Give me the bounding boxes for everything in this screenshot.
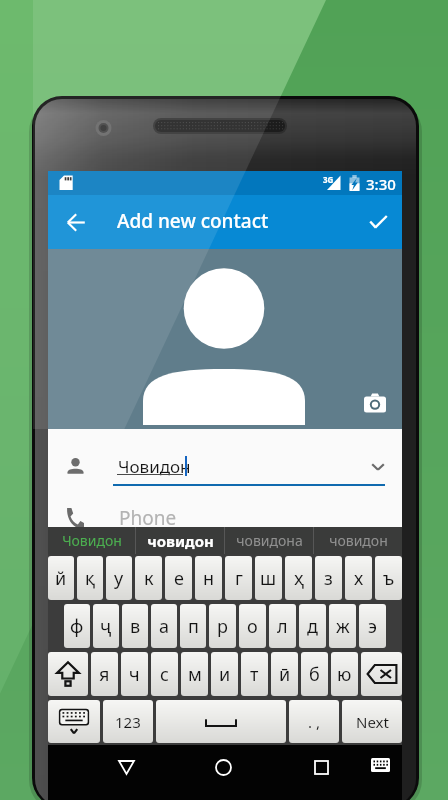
button[interactable]: б [301, 652, 328, 696]
staticText: з [324, 566, 333, 591]
button[interactable]: г [225, 556, 252, 600]
button[interactable]: т [241, 652, 268, 696]
button[interactable] [48, 700, 100, 743]
button[interactable]: Switch keyboard [360, 745, 400, 785]
button[interactable]: д [299, 604, 326, 648]
staticText: к [144, 566, 154, 591]
staticText: м [188, 662, 202, 687]
button[interactable]: ж [329, 604, 356, 648]
button[interactable]: қ [77, 556, 103, 600]
button[interactable]: Back [104, 745, 148, 789]
staticText: ӣ [279, 662, 291, 687]
button[interactable]: Човидон [48, 527, 135, 554]
staticText: х [354, 566, 364, 591]
button[interactable]: ю [331, 652, 358, 696]
button[interactable]: с [151, 652, 178, 696]
staticText: ш [260, 566, 277, 591]
staticText: Човидон [62, 531, 122, 550]
staticText: човидон [329, 531, 388, 550]
button[interactable]: човидон [136, 527, 224, 554]
staticText: Phone [119, 505, 177, 531]
button[interactable]: я [91, 652, 118, 696]
button[interactable]: ӣ [271, 652, 298, 696]
staticText: . , [308, 712, 320, 732]
staticText: ф [70, 614, 84, 639]
staticText: човидон [147, 531, 214, 551]
button[interactable]: н [195, 556, 222, 600]
staticText: е [174, 566, 184, 591]
staticText: а [159, 614, 170, 639]
button[interactable]: Expand name fields [358, 447, 398, 487]
staticText: у [114, 566, 124, 591]
staticText: Човидон [118, 455, 191, 478]
staticText: Next [356, 712, 389, 732]
button[interactable]: у [106, 556, 132, 600]
staticText: т [250, 662, 259, 687]
button[interactable]: . , [289, 700, 339, 743]
button[interactable]: ф [64, 604, 90, 648]
button[interactable] [48, 652, 88, 696]
staticText: и [219, 662, 231, 687]
button[interactable]: е [165, 556, 192, 600]
button[interactable]: Phone [48, 491, 402, 527]
button[interactable]: х [345, 556, 372, 600]
button[interactable]: м [181, 652, 208, 696]
staticText: 123 [115, 712, 141, 732]
staticText: Add new contact [117, 208, 269, 234]
staticText: д [307, 614, 318, 639]
button[interactable]: Recents [299, 745, 343, 789]
button[interactable]: а [151, 604, 177, 648]
button[interactable]: Next [342, 700, 402, 743]
button[interactable]: ҳ [285, 556, 312, 600]
button[interactable]: к [135, 556, 162, 600]
staticText: о [247, 614, 258, 639]
button[interactable]: ш [255, 556, 282, 600]
button[interactable]: ъ [375, 556, 402, 600]
staticText: ч [129, 662, 140, 687]
button[interactable]: Home [201, 745, 245, 789]
staticText: п [188, 614, 199, 639]
staticText: н [203, 566, 215, 591]
button[interactable]: Take photo [364, 393, 386, 413]
staticText: ъ [383, 566, 395, 591]
staticText: л [277, 614, 288, 639]
button[interactable]: Save [356, 200, 400, 244]
staticText: 3G [323, 174, 334, 185]
button[interactable]: р [209, 604, 236, 648]
staticText: р [217, 614, 228, 639]
button[interactable]: човидон [314, 527, 402, 554]
staticText: г [235, 566, 243, 591]
button[interactable]: 123 [103, 700, 153, 743]
staticText: в [130, 614, 141, 639]
staticText: б [309, 662, 320, 687]
button[interactable]: з [315, 556, 342, 600]
button[interactable] [361, 652, 402, 696]
button[interactable]: л [269, 604, 296, 648]
staticText: ж [336, 614, 350, 639]
staticText: й [55, 566, 67, 591]
staticText: човидона [236, 531, 303, 550]
staticText: ҷ [100, 614, 112, 639]
staticText: с [160, 662, 169, 687]
staticText: ю [337, 662, 352, 687]
button[interactable]: човидона [225, 527, 313, 554]
staticText: қ [85, 566, 96, 591]
button[interactable]: э [359, 604, 386, 648]
staticText: 3:30 [366, 174, 396, 194]
button[interactable]: в [122, 604, 148, 648]
button[interactable]: ҷ [93, 604, 119, 648]
button[interactable]: о [239, 604, 266, 648]
staticText: э [368, 614, 377, 639]
button[interactable]: ч [121, 652, 148, 696]
staticText: ҳ [294, 566, 304, 591]
staticText: я [99, 662, 110, 687]
button[interactable]: Back [54, 200, 98, 244]
button[interactable]: п [180, 604, 206, 648]
button[interactable]: и [211, 652, 238, 696]
button[interactable]: й [48, 556, 74, 600]
button[interactable]: Човидон [48, 431, 402, 489]
button[interactable] [156, 700, 286, 743]
